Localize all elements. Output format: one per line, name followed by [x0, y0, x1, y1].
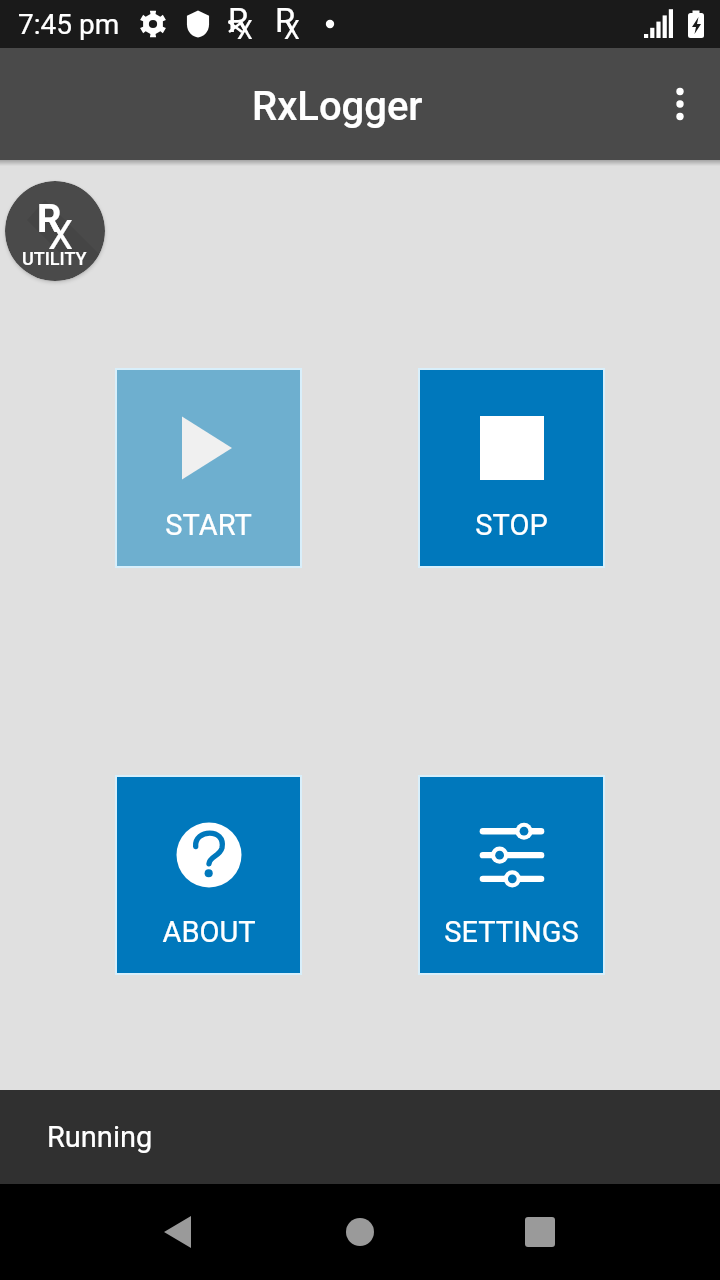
staticText: STOP: [475, 508, 548, 542]
button[interactable]: Start logging: [117, 370, 300, 566]
button[interactable]: Home: [320, 1192, 400, 1272]
staticText: START: [165, 508, 252, 542]
staticText: X: [284, 16, 300, 45]
button[interactable]: Settings: [420, 777, 603, 973]
button[interactable]: Recent apps: [500, 1192, 580, 1272]
staticText: SETTINGS: [444, 915, 579, 949]
staticText: Running: [47, 1120, 153, 1154]
button[interactable]: Back: [137, 1192, 217, 1272]
staticText: R: [228, 1, 249, 35]
button[interactable]: About: [117, 777, 300, 973]
staticText: R: [37, 197, 62, 242]
button[interactable]: More options: [640, 64, 720, 144]
button[interactable]: RxUtility logo: [5, 181, 105, 281]
staticText: X: [237, 16, 253, 45]
button[interactable]: Stop logging: [420, 370, 603, 566]
staticText: X: [48, 212, 74, 259]
staticText: 7:45 pm: [18, 8, 120, 41]
staticText: RxLogger: [252, 83, 423, 130]
staticText: ABOUT: [162, 915, 256, 949]
staticText: UTILITY: [22, 248, 87, 269]
staticText: R: [275, 1, 296, 35]
